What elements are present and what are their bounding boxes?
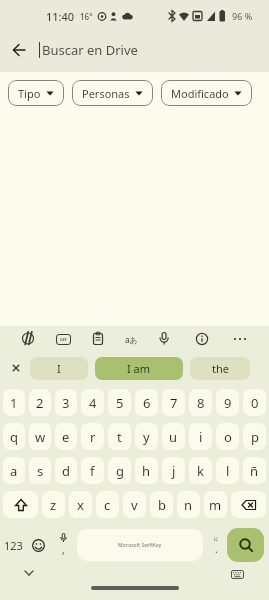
button[interactable]: g: [108, 457, 131, 484]
button[interactable]: d: [55, 457, 77, 484]
staticText: d: [62, 462, 70, 480]
staticText: e: [62, 428, 70, 446]
staticText: q: [10, 428, 18, 446]
button[interactable]: m: [204, 491, 227, 518]
staticText: o: [224, 428, 232, 446]
staticText: I am: [127, 361, 151, 376]
button[interactable]: t: [108, 423, 131, 450]
button[interactable]: the: [190, 357, 250, 380]
button[interactable]: p: [243, 423, 266, 450]
staticText: 16°: [80, 11, 93, 22]
button[interactable]: ,: [51, 528, 75, 562]
button[interactable]: z: [42, 491, 65, 518]
button[interactable]: [87, 328, 109, 350]
button[interactable]: s: [29, 457, 51, 484]
staticText: 11:40: [46, 9, 75, 24]
staticText: ¡¿: [214, 534, 219, 542]
staticText: 8: [197, 394, 205, 412]
button[interactable]: [3, 491, 38, 518]
button[interactable]: [191, 328, 213, 350]
button[interactable]: c: [96, 491, 119, 518]
staticText: b: [158, 496, 166, 514]
button[interactable]: 0: [243, 389, 266, 416]
button[interactable]: k: [189, 457, 212, 484]
staticText: Buscar en Drive: [42, 41, 138, 59]
staticText: x: [77, 496, 84, 514]
button[interactable]: [91, 586, 179, 590]
button[interactable]: GIF: [56, 334, 71, 345]
staticText: g: [116, 462, 124, 480]
staticText: a: [10, 462, 18, 480]
button[interactable]: aあ: [125, 334, 138, 345]
staticText: y: [143, 428, 150, 446]
button[interactable]: 2: [29, 389, 51, 416]
staticText: k: [197, 462, 204, 480]
button[interactable]: a: [3, 457, 25, 484]
button[interactable]: 9: [216, 389, 239, 416]
button[interactable]: [229, 328, 251, 350]
button[interactable]: w: [29, 423, 51, 450]
button[interactable]: Microsoft SwiftKey: [77, 529, 203, 561]
staticText: n: [184, 496, 193, 514]
button[interactable]: [153, 328, 175, 350]
button[interactable]: I: [30, 357, 88, 380]
button[interactable]: Buscar en Drive: [0, 28, 269, 72]
button[interactable]: [231, 491, 266, 518]
staticText: 7: [170, 394, 178, 412]
button[interactable]: f: [81, 457, 104, 484]
staticText: Modificado: [171, 86, 229, 101]
button[interactable]: I am: [95, 357, 183, 380]
button[interactable]: q: [3, 423, 25, 450]
staticText: 0: [251, 394, 259, 412]
button[interactable]: 7: [162, 389, 185, 416]
button[interactable]: e: [55, 423, 77, 450]
button[interactable]: o: [216, 423, 239, 450]
staticText: GIF: [60, 337, 67, 342]
button[interactable]: u: [162, 423, 185, 450]
staticText: 1: [10, 394, 18, 412]
staticText: h: [142, 462, 151, 480]
button[interactable]: x: [69, 491, 92, 518]
button[interactable]: 8: [189, 389, 212, 416]
staticText: Tipo: [18, 86, 41, 101]
staticText: t: [117, 428, 122, 446]
button[interactable]: j: [162, 457, 185, 484]
staticText: r: [90, 428, 96, 446]
button[interactable]: 5: [108, 389, 131, 416]
staticText: i: [199, 428, 203, 446]
staticText: l: [226, 462, 230, 480]
button[interactable]: r: [81, 423, 104, 450]
button[interactable]: [18, 328, 40, 350]
staticText: 9: [224, 394, 232, 412]
button[interactable]: 1: [3, 389, 25, 416]
button[interactable]: [4, 356, 28, 380]
staticText: ,: [62, 543, 65, 557]
staticText: m: [209, 496, 222, 514]
button[interactable]: [26, 528, 51, 562]
button[interactable]: h: [135, 457, 158, 484]
staticText: 6: [143, 394, 151, 412]
button[interactable]: 123: [0, 528, 26, 562]
button[interactable]: Modificado: [161, 80, 252, 106]
button[interactable]: 3: [55, 389, 77, 416]
button[interactable]: v: [123, 491, 146, 518]
staticText: 3: [62, 394, 70, 412]
button[interactable]: ñ: [243, 457, 266, 484]
button[interactable]: l: [216, 457, 239, 484]
button[interactable]: Tipo: [8, 80, 64, 106]
button[interactable]: 6: [135, 389, 158, 416]
staticText: v: [131, 496, 138, 514]
button[interactable]: 4: [81, 389, 104, 416]
button[interactable]: n: [177, 491, 200, 518]
button[interactable]: i: [189, 423, 212, 450]
staticText: u: [169, 428, 178, 446]
staticText: ñ: [250, 462, 259, 480]
button[interactable]: ¡¿: [205, 528, 227, 562]
button[interactable]: b: [150, 491, 173, 518]
button[interactable]: Personas: [72, 80, 153, 106]
staticText: 4: [89, 394, 97, 412]
button[interactable]: [227, 528, 264, 562]
staticText: p: [251, 428, 259, 446]
staticText: 96 %: [232, 10, 253, 22]
button[interactable]: y: [135, 423, 158, 450]
